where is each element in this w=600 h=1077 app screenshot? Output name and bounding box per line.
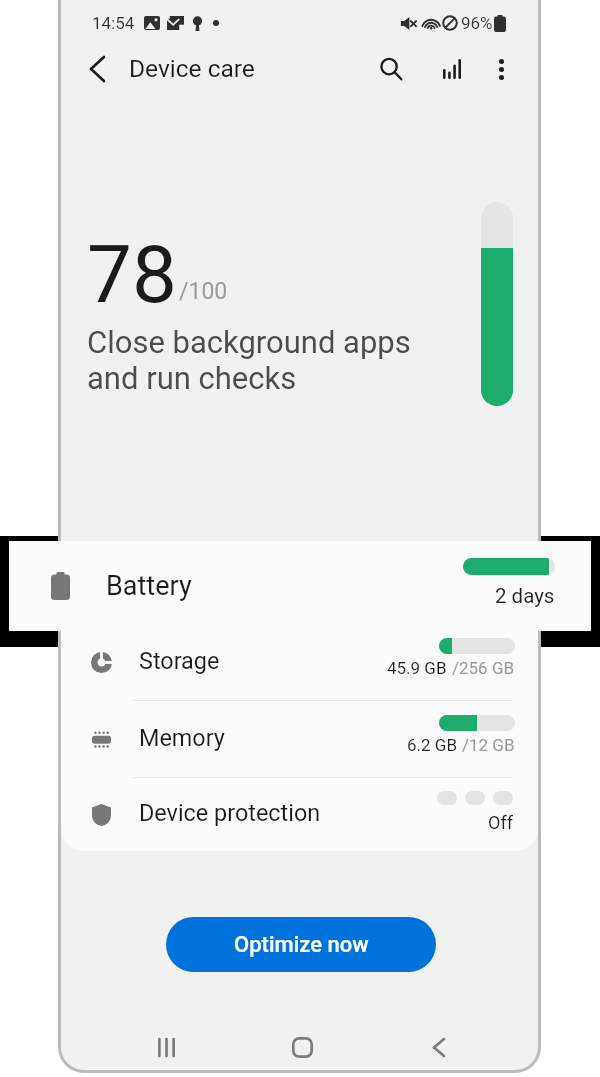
button[interactable]: Optimize now: [166, 917, 436, 972]
button[interactable]: Navigate up: [75, 47, 119, 91]
button[interactable]: Battery: [9, 541, 591, 631]
staticText: Optimize now: [234, 932, 369, 958]
staticText: 2 days: [495, 584, 555, 608]
button[interactable]: Device protection: [61, 778, 538, 851]
staticText: Off: [488, 812, 513, 833]
staticText: 6.2 GB: [407, 735, 457, 755]
button[interactable]: [61, 547, 538, 623]
button[interactable]: Memory: [61, 701, 538, 777]
button[interactable]: Back: [414, 1023, 462, 1071]
staticText: 14:54: [92, 13, 135, 33]
button[interactable]: More options: [479, 47, 523, 91]
staticText: Memory: [139, 724, 225, 751]
staticText: 78: [87, 228, 177, 322]
staticText: Battery: [106, 570, 192, 602]
staticText: Device protection: [139, 799, 321, 826]
staticText: Close background apps and run checks: [87, 324, 411, 397]
button[interactable]: Search: [369, 47, 413, 91]
staticText: 45.9 GB: [387, 658, 447, 678]
staticText: Storage: [139, 647, 220, 674]
staticText: /100: [179, 278, 228, 305]
button[interactable]: Recent apps: [142, 1023, 190, 1071]
staticText: 96%: [461, 13, 493, 33]
button[interactable]: Storage: [61, 624, 538, 700]
staticText: Device care: [129, 54, 255, 83]
staticText: /256 GB: [452, 658, 515, 678]
button[interactable]: Usage statistics: [430, 47, 474, 91]
button[interactable]: Home: [278, 1023, 326, 1071]
staticText: /12 GB: [462, 735, 515, 755]
